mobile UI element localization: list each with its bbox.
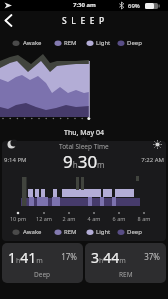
button[interactable]: 1h41m: [2, 243, 83, 283]
staticText: REM: [119, 270, 133, 279]
staticText: 8 am: [135, 215, 153, 222]
staticText: Light: [96, 39, 111, 47]
staticText: 1h41m: [8, 248, 43, 267]
staticText: 7:30 am: [73, 1, 96, 9]
staticText: 7:22 AM: [138, 156, 164, 164]
staticText: Deep: [34, 270, 51, 279]
staticText: 69%: [128, 2, 140, 10]
staticText: 4 am: [85, 215, 103, 222]
staticText: 6 am: [110, 215, 128, 222]
staticText: Total Sleep Time: [59, 142, 109, 151]
staticText: Light: [96, 228, 111, 236]
staticText: 12 am: [35, 215, 53, 222]
staticText: REM: [64, 228, 77, 236]
staticText: Awake: [23, 228, 42, 236]
button[interactable]: Thu, May 04: [0, 127, 168, 139]
staticText: 37%: [138, 251, 160, 262]
staticText: 9:14 PM: [4, 156, 27, 164]
staticText: 3h44m: [91, 248, 126, 267]
button[interactable]: 3h44m: [85, 243, 166, 283]
staticText: REM: [64, 39, 77, 47]
staticText: 17%: [55, 251, 77, 262]
staticText: Thu, May 04: [64, 128, 104, 138]
button[interactable]: [3, 14, 15, 27]
staticText: 10 pm: [9, 215, 27, 222]
staticText: Deep: [127, 228, 142, 236]
staticText: Awake: [23, 39, 42, 47]
staticText: Deep: [127, 39, 142, 47]
staticText: 2 am: [60, 215, 78, 222]
staticText: 9h30m: [63, 150, 105, 173]
staticText: S L E E P: [62, 15, 106, 27]
